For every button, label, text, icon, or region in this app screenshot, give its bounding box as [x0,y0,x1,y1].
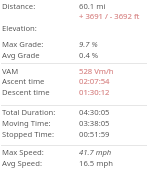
staticText: Avg Grade [2,50,40,60]
button[interactable]: Ascent time [0,76,150,87]
button[interactable]: Distance: [0,1,150,12]
button[interactable]: Total Duration: [0,107,150,118]
staticText: Max Grade: [2,39,44,49]
staticText: 60.1 mi [79,1,140,11]
button[interactable]: Moving Time: [0,118,150,129]
staticText: 01:30:12 [79,87,140,97]
staticText: 00:51:59 [79,129,140,139]
staticText: 02:07:54 [79,76,140,86]
staticText: Stopped Time: [2,129,55,139]
button[interactable]: Max Grade: [0,39,150,50]
staticText: Ascent time [2,76,45,86]
staticText: Max Speed: [2,147,44,157]
button[interactable]: Descent time [0,87,150,98]
staticText: Elevation: [2,23,37,33]
staticText: Avg Speed: [2,158,42,168]
staticText: VAM [2,66,19,76]
button[interactable] [0,11,150,33]
staticText: 41.7 mph [79,147,140,157]
button[interactable]: VAM [0,66,150,77]
button[interactable]: Stopped Time: [0,129,150,140]
button[interactable]: Avg Speed: [0,158,150,169]
staticText: 04:30:05 [79,107,140,117]
staticText: Total Duration: [2,107,56,117]
staticText: Distance: [2,1,36,11]
button[interactable]: Max Speed: [0,147,150,158]
staticText: 16.5 mph [79,158,140,168]
staticText: 0.4 % [79,50,140,60]
button[interactable]: Avg Grade [0,50,150,61]
staticText: Moving Time: [2,118,51,128]
staticText: + 3691 / - 3692 ft [79,11,140,21]
staticText: Descent time [2,87,50,97]
staticText: 528 Vm/h [79,66,140,76]
staticText: 03:38:05 [79,118,140,128]
staticText: 9.7 % [79,39,140,49]
